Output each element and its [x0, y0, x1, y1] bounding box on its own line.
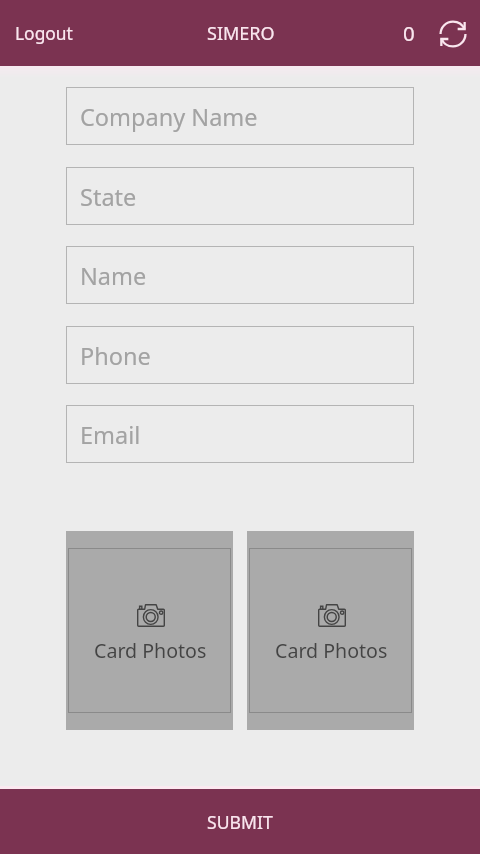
staticText: Company Name [80, 101, 258, 133]
staticText: SIMERO [207, 21, 275, 46]
staticText: Name [80, 260, 147, 292]
staticText: State [80, 181, 137, 213]
staticText: Card Photos [275, 637, 388, 664]
staticText: Card Photos [94, 637, 207, 664]
button[interactable]: Sync [439, 20, 467, 48]
button[interactable]: Company Name [66, 87, 414, 145]
button[interactable]: Card Photos [66, 531, 233, 730]
button[interactable]: Phone [66, 326, 414, 384]
button[interactable]: Logout [0, 11, 87, 55]
staticText: SUBMIT [207, 810, 273, 834]
staticText: Email [80, 419, 141, 451]
button[interactable]: Email [66, 405, 414, 463]
staticText: Logout [15, 21, 73, 45]
staticText: 0 [403, 19, 415, 47]
button[interactable]: State [66, 167, 414, 225]
button[interactable]: Name [66, 246, 414, 304]
button[interactable]: Card Photos [247, 531, 414, 730]
button[interactable]: SUBMIT [0, 789, 480, 854]
staticText: Phone [80, 340, 151, 372]
